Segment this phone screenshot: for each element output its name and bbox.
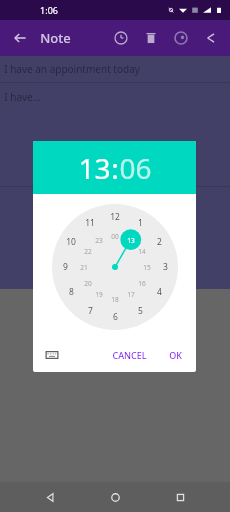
staticText: 21	[80, 263, 88, 272]
staticText: I have...	[4, 90, 41, 104]
staticText: 23	[95, 236, 103, 245]
button[interactable]: Color	[166, 23, 196, 53]
staticText: 14	[138, 247, 146, 256]
staticText: 10	[66, 236, 76, 248]
button[interactable]: Recents	[165, 482, 195, 512]
staticText: 17	[127, 290, 135, 299]
staticText: 00	[111, 232, 119, 241]
staticText: OK	[169, 349, 182, 361]
button[interactable]: 06	[119, 149, 152, 187]
staticText: 6	[113, 311, 118, 323]
button[interactable]: 13	[78, 149, 111, 187]
staticText: 12	[110, 211, 120, 223]
staticText: 11	[85, 217, 95, 229]
staticText: CANCEL	[112, 349, 147, 361]
button[interactable]: Reminder	[106, 23, 136, 53]
staticText: 2	[157, 236, 162, 248]
staticText: 1:06	[40, 4, 58, 16]
staticText: 9	[63, 261, 68, 273]
staticText: 7	[88, 305, 93, 317]
staticText: 1	[138, 217, 143, 229]
button[interactable]: Share	[196, 23, 226, 53]
staticText: 4	[157, 286, 162, 298]
staticText: :	[111, 149, 119, 187]
button[interactable]: Keyboard input	[41, 344, 63, 366]
button[interactable]: CANCEL	[106, 345, 153, 365]
staticText: I have an appointment today	[4, 62, 140, 76]
button[interactable]: Back	[35, 482, 65, 512]
staticText: 19	[95, 290, 103, 299]
button[interactable]: Home	[100, 482, 130, 512]
staticText: 22	[84, 247, 92, 256]
staticText: 8	[69, 286, 74, 298]
staticText: 3	[163, 261, 168, 273]
staticText: 13	[127, 236, 135, 245]
staticText: 18	[111, 295, 119, 304]
staticText: Note	[40, 29, 71, 47]
button[interactable]: OK	[163, 345, 188, 365]
staticText: 15	[143, 263, 151, 272]
staticText: 5	[138, 305, 143, 317]
button[interactable]: Delete	[136, 23, 166, 53]
button[interactable]: Back	[6, 24, 34, 52]
staticText: 16	[138, 279, 146, 288]
staticText: 20	[84, 279, 92, 288]
